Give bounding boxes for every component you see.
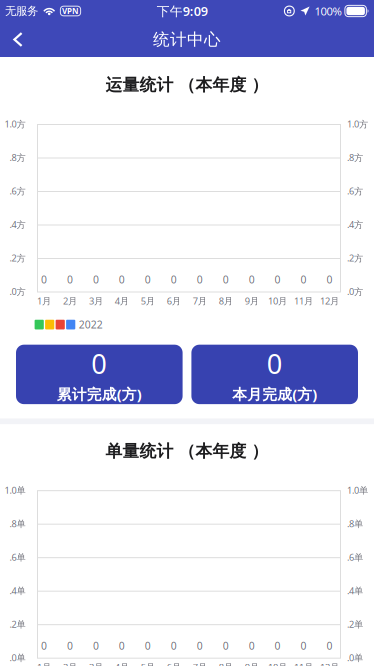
staticText: 12月 bbox=[320, 294, 339, 307]
staticText: 7月 bbox=[193, 294, 207, 307]
staticText: 100% bbox=[314, 3, 341, 19]
staticText: 1.0方 bbox=[347, 118, 368, 130]
staticText: 4月 bbox=[115, 661, 129, 666]
staticText: 6月 bbox=[167, 294, 181, 307]
staticText: .2单 bbox=[347, 618, 363, 630]
staticText: 12月 bbox=[320, 661, 339, 666]
staticText: 0 bbox=[41, 639, 47, 653]
staticText: 0 bbox=[223, 272, 229, 287]
staticText: .8单 bbox=[9, 517, 25, 530]
staticText: 1月 bbox=[37, 294, 51, 307]
staticText: .6单 bbox=[347, 551, 363, 563]
button[interactable]: 返回 bbox=[0, 22, 36, 57]
staticText: 0 bbox=[275, 272, 281, 287]
staticText: .6方 bbox=[9, 185, 25, 197]
staticText: .2方 bbox=[9, 252, 25, 264]
staticText: .4单 bbox=[9, 584, 25, 597]
staticText: 0 bbox=[249, 272, 255, 287]
button[interactable]: 0 bbox=[191, 345, 358, 404]
staticText: 0 bbox=[267, 345, 283, 382]
staticText: .0方 bbox=[9, 285, 25, 298]
staticText: 0 bbox=[119, 272, 125, 287]
staticText: 0 bbox=[171, 272, 177, 287]
staticText: 0 bbox=[145, 272, 151, 287]
staticText: 0 bbox=[197, 272, 203, 287]
staticText: 4月 bbox=[115, 294, 129, 307]
staticText: 统计中心 bbox=[153, 29, 221, 50]
staticText: 0 bbox=[326, 639, 332, 653]
staticText: 1.0单 bbox=[347, 484, 368, 496]
staticText: 3月 bbox=[89, 661, 103, 666]
staticText: .0单 bbox=[9, 651, 25, 664]
staticText: 5月 bbox=[141, 294, 155, 307]
staticText: 下午9:09 bbox=[157, 2, 208, 20]
staticText: 0 bbox=[171, 639, 177, 653]
staticText: .4单 bbox=[347, 584, 363, 597]
staticText: .0单 bbox=[347, 651, 363, 664]
staticText: 6月 bbox=[167, 661, 181, 666]
staticText: .4方 bbox=[9, 218, 25, 231]
staticText: 8月 bbox=[219, 661, 233, 666]
staticText: 1.0方 bbox=[4, 118, 25, 130]
staticText: 2月 bbox=[63, 294, 77, 307]
staticText: 0 bbox=[119, 639, 125, 653]
staticText: .8方 bbox=[347, 151, 363, 164]
staticText: 0 bbox=[67, 639, 73, 653]
staticText: 单量统计 （本年度 ） bbox=[105, 441, 268, 462]
staticText: .6方 bbox=[347, 185, 363, 197]
staticText: .2单 bbox=[9, 618, 25, 630]
staticText: 7月 bbox=[193, 661, 207, 666]
staticText: 0 bbox=[93, 639, 99, 653]
staticText: 0 bbox=[41, 272, 47, 287]
staticText: 0 bbox=[301, 639, 307, 653]
staticText: .0方 bbox=[347, 285, 363, 298]
staticText: 0 bbox=[67, 272, 73, 287]
staticText: 2月 bbox=[63, 661, 77, 666]
staticText: .8方 bbox=[9, 151, 25, 164]
staticText: 0 bbox=[197, 639, 203, 653]
staticText: .2方 bbox=[347, 252, 363, 264]
staticText: 9月 bbox=[245, 294, 259, 307]
staticText: VPN bbox=[62, 6, 79, 16]
staticText: 0 bbox=[275, 639, 281, 653]
staticText: 10月 bbox=[268, 294, 287, 307]
staticText: 无服务 bbox=[5, 4, 38, 18]
staticText: 0 bbox=[326, 272, 332, 287]
staticText: 3月 bbox=[89, 294, 103, 307]
staticText: 运量统计 （本年度 ） bbox=[105, 74, 268, 95]
staticText: 11月 bbox=[294, 661, 313, 666]
staticText: 0 bbox=[145, 639, 151, 653]
staticText: 9月 bbox=[245, 661, 259, 666]
staticText: 累计完成(方) bbox=[57, 384, 142, 404]
staticText: 本月完成(方) bbox=[232, 384, 317, 404]
staticText: 2022 bbox=[79, 317, 103, 332]
staticText: 1月 bbox=[37, 661, 51, 666]
staticText: 8月 bbox=[219, 294, 233, 307]
button[interactable]: 0 bbox=[16, 345, 183, 404]
staticText: 5月 bbox=[141, 661, 155, 666]
staticText: 0 bbox=[301, 272, 307, 287]
staticText: 0 bbox=[93, 272, 99, 287]
staticText: 11月 bbox=[294, 294, 313, 307]
staticText: 0 bbox=[249, 639, 255, 653]
staticText: 10月 bbox=[268, 661, 287, 666]
staticText: .4方 bbox=[347, 218, 363, 231]
staticText: .6单 bbox=[9, 551, 25, 563]
staticText: 1.0单 bbox=[4, 484, 25, 496]
staticText: 0 bbox=[91, 345, 107, 382]
staticText: .8单 bbox=[347, 517, 363, 530]
staticText: 0 bbox=[223, 639, 229, 653]
